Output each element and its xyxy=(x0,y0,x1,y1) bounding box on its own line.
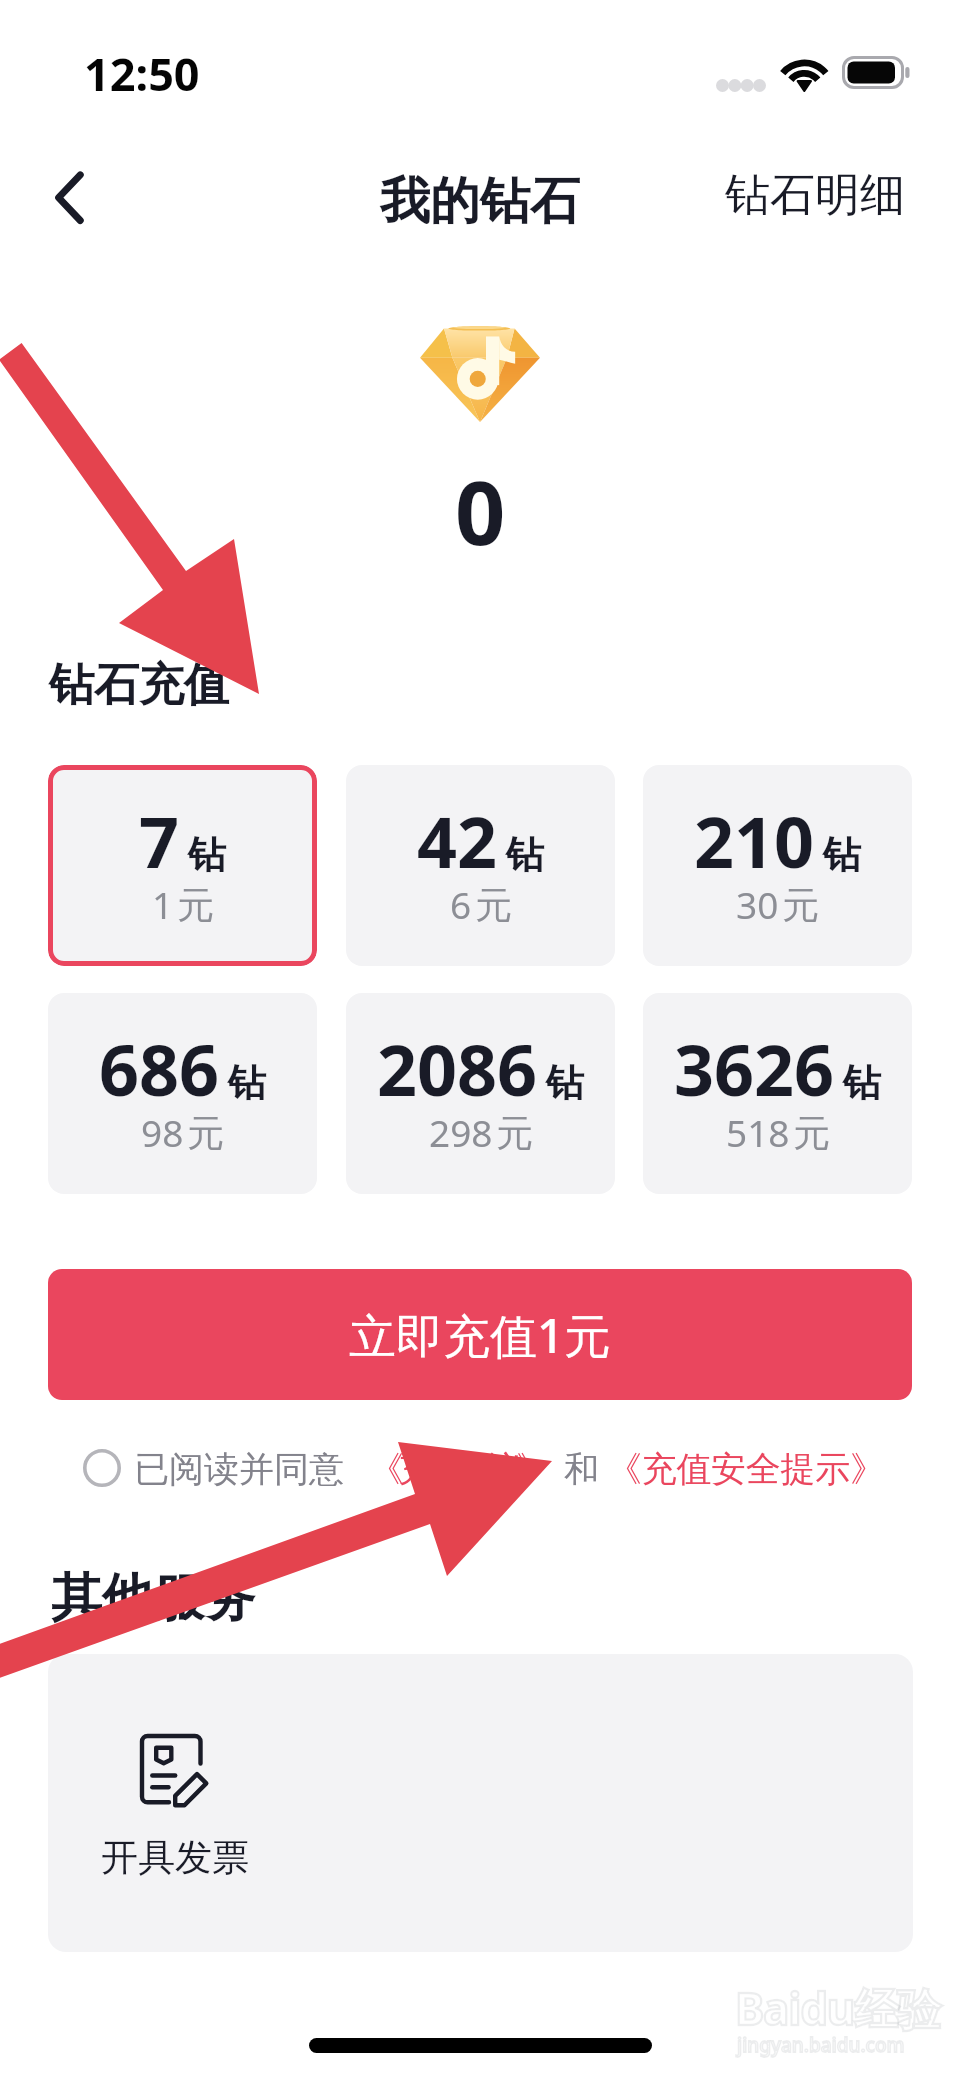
staticText: 12:50 xyxy=(84,43,200,104)
staticText: 1 xyxy=(152,879,174,929)
staticText: 其他服务 xyxy=(51,1566,255,1630)
button[interactable]: 立即充值1元 xyxy=(48,1269,912,1400)
staticText: 钻 xyxy=(843,1059,881,1107)
staticText: 《充值协议》 xyxy=(369,1447,546,1491)
staticText: 立即充值1元 xyxy=(349,1303,611,1367)
staticText: 42 xyxy=(417,793,498,888)
button[interactable]: 开具发票 xyxy=(86,1724,336,1876)
staticText: 和 xyxy=(564,1447,599,1491)
button[interactable]: Back xyxy=(22,149,118,245)
staticText: 元 xyxy=(782,882,819,929)
staticText: 518 xyxy=(726,1107,790,1157)
staticText: 7 xyxy=(139,793,180,888)
staticText: 已阅读并同意 xyxy=(134,1447,344,1491)
staticText: 《充值安全提示》 xyxy=(607,1447,885,1491)
staticText: 2086 xyxy=(377,1021,538,1116)
staticText: 我的钻石 xyxy=(380,170,580,233)
staticText: 0 xyxy=(455,451,506,571)
staticText: 钻 xyxy=(506,831,544,879)
staticText: 元 xyxy=(177,882,214,929)
staticText: Baidu经验 xyxy=(735,1978,940,2038)
staticText: 686 xyxy=(99,1021,220,1116)
button[interactable]: 《充值安全提示》 xyxy=(607,1447,885,1491)
staticText: 钻 xyxy=(188,831,226,879)
staticText: 元 xyxy=(475,882,512,929)
button[interactable]: 《充值协议》 xyxy=(369,1447,546,1491)
button[interactable]: 3626 xyxy=(643,993,912,1194)
staticText: 210 xyxy=(694,793,815,888)
button[interactable]: 7 xyxy=(48,765,317,966)
staticText: 钻 xyxy=(823,831,861,879)
staticText: 钻石明细 xyxy=(725,167,905,224)
staticText: 298 xyxy=(429,1107,493,1157)
button[interactable]: 686 xyxy=(48,993,317,1194)
staticText: 钻石充值 xyxy=(49,657,229,714)
staticText: 30 xyxy=(736,879,779,929)
staticText: 元 xyxy=(187,1110,224,1157)
staticText: 3626 xyxy=(674,1021,835,1116)
button[interactable]: 42 xyxy=(346,765,615,966)
staticText: 98 xyxy=(141,1107,184,1157)
button[interactable]: Agree checkbox xyxy=(74,1440,130,1496)
button[interactable]: 210 xyxy=(643,765,912,966)
staticText: jingyan.baidu.com xyxy=(737,2032,905,2058)
staticText: 钻 xyxy=(546,1059,584,1107)
staticText: 6 xyxy=(450,879,472,929)
button[interactable]: 钻石明细 xyxy=(709,155,921,236)
staticText: 元 xyxy=(496,1110,533,1157)
button[interactable]: 2086 xyxy=(346,993,615,1194)
staticText: 钻 xyxy=(228,1059,266,1107)
staticText: 开具发票 xyxy=(101,1834,249,1881)
staticText: 元 xyxy=(793,1110,830,1157)
